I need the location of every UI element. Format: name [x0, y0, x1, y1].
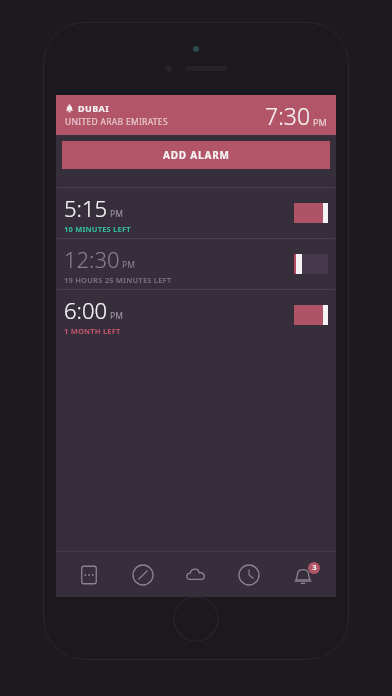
- button[interactable]: Clock: [229, 555, 269, 595]
- staticText: PM: [110, 310, 123, 322]
- staticText: UNITED ARAB EMIRATES: [65, 116, 168, 128]
- staticText: 19 HOURS 25 MINUTES LEFT: [64, 275, 172, 285]
- button[interactable]: Alarm on: [294, 305, 328, 325]
- button[interactable]: Notes: [69, 555, 109, 595]
- button[interactable]: ADD ALARM: [62, 141, 330, 169]
- button[interactable]: Compass: [123, 555, 163, 595]
- staticText: 5:15: [64, 193, 108, 223]
- staticText: 3: [312, 563, 317, 573]
- button[interactable]: Alarm off: [294, 254, 328, 274]
- staticText: PM: [110, 208, 123, 220]
- button[interactable]: Alarm on: [294, 203, 328, 223]
- button[interactable]: Alarms, 3 notifications: [283, 555, 323, 595]
- staticText: DUBAI: [78, 102, 110, 114]
- staticText: 6:00: [64, 295, 108, 325]
- button[interactable]: DUBAI: [56, 95, 336, 135]
- button[interactable]: 12:30: [56, 239, 336, 289]
- staticText: 7:30: [265, 100, 311, 131]
- button[interactable]: 6:00: [56, 290, 336, 340]
- staticText: PM: [122, 259, 135, 271]
- staticText: PM: [313, 116, 327, 128]
- staticText: ADD ALARM: [163, 148, 230, 162]
- staticText: 1 MONTH LEFT: [64, 326, 121, 336]
- staticText: 12:30: [64, 244, 120, 274]
- button[interactable]: 5:15: [56, 188, 336, 238]
- button[interactable]: Weather: [176, 555, 216, 595]
- staticText: 10 MINUTES LEFT: [64, 224, 131, 234]
